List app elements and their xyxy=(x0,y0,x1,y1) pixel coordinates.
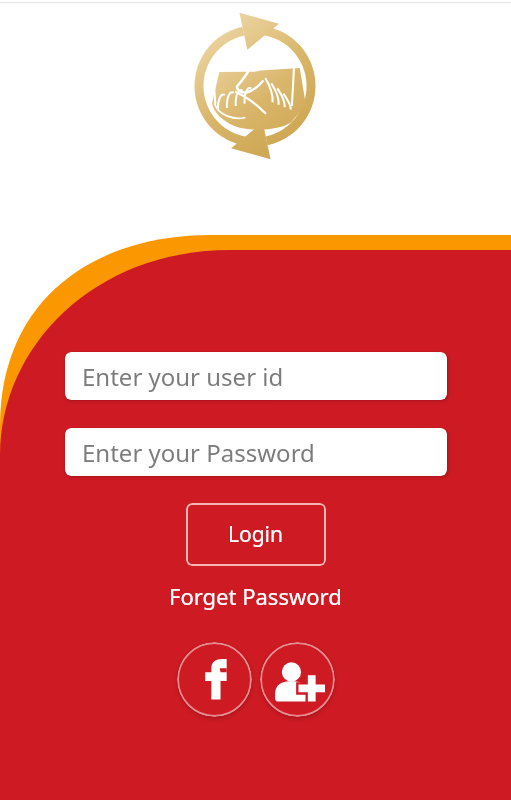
button[interactable]: Login xyxy=(186,503,326,566)
button[interactable]: Forget Password xyxy=(169,581,342,611)
staticText: Login xyxy=(228,520,284,549)
staticText: Enter your Password xyxy=(82,436,315,469)
button[interactable]: Register new user xyxy=(260,642,335,717)
button[interactable]: Enter your Password xyxy=(65,428,447,476)
button[interactable]: Login with Facebook xyxy=(177,642,252,717)
staticText: Enter your user id xyxy=(82,360,284,393)
button[interactable]: Enter your user id xyxy=(65,352,447,400)
